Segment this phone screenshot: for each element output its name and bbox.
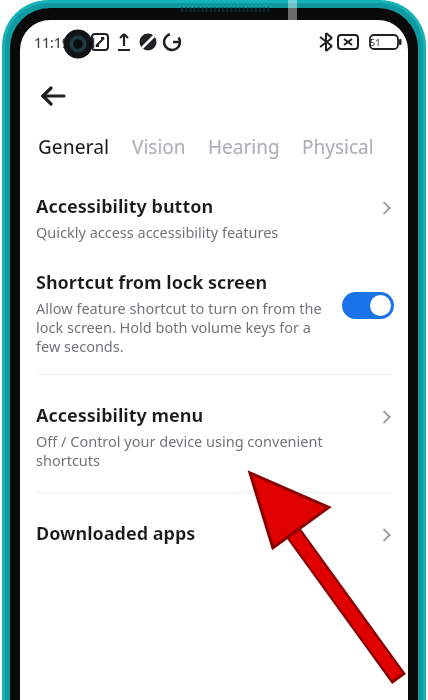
button[interactable]: Accessibility menu <box>20 401 408 472</box>
button[interactable]: Physical <box>300 128 376 166</box>
staticText: Shortcut from lock screen <box>36 270 268 295</box>
button[interactable]: Shortcut from lock screen toggle, on <box>342 292 394 319</box>
staticText: Quickly access accessibility features <box>36 222 279 242</box>
staticText: Hearing <box>208 134 280 160</box>
button[interactable]: Accessibility button <box>20 192 408 244</box>
staticText: 51 <box>370 36 381 48</box>
staticText: Downloaded apps <box>36 521 196 546</box>
staticText: Off / Control your device using convenie… <box>36 431 370 470</box>
staticText: Vision <box>132 134 186 160</box>
button[interactable]: Downloaded apps <box>20 519 408 548</box>
button[interactable]: General <box>36 128 112 166</box>
staticText: Accessibility menu <box>36 403 204 428</box>
staticText: Physical <box>302 134 374 160</box>
staticText: Allow feature shortcut to turn on from t… <box>36 298 332 356</box>
button[interactable]: Back <box>30 74 76 118</box>
button[interactable]: Vision <box>130 128 188 166</box>
staticText: General <box>38 134 110 160</box>
button[interactable]: Hearing <box>206 128 282 166</box>
button[interactable]: Shortcut from lock screen <box>20 270 408 356</box>
staticText: Accessibility button <box>36 194 214 219</box>
staticText: 11:19 AM <box>34 33 96 52</box>
